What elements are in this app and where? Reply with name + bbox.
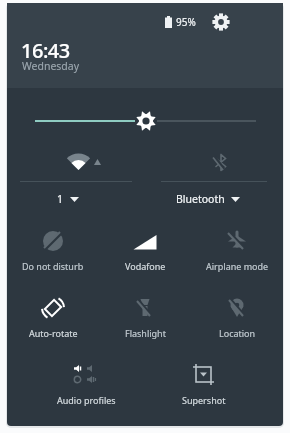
- staticText: Location: [219, 327, 256, 339]
- staticText: Airplane mode: [206, 260, 269, 272]
- button[interactable]: Flashlight: [99, 282, 191, 349]
- button[interactable]: Audio profiles: [27, 349, 145, 416]
- staticText: Bluetooth: [176, 192, 225, 206]
- button[interactable]: Airplane mode: [191, 215, 283, 282]
- button[interactable]: Bluetooth: [145, 143, 283, 215]
- staticText: Supershot: [182, 394, 226, 406]
- staticText: Audio profiles: [57, 394, 116, 406]
- button[interactable]: Location: [191, 282, 283, 349]
- staticText: 16:43: [21, 37, 70, 64]
- staticText: 95%: [176, 15, 196, 29]
- button[interactable]: 1: [7, 143, 145, 215]
- staticText: Do not disturb: [22, 260, 84, 272]
- staticText: Auto-rotate: [29, 327, 78, 339]
- staticText: 1: [57, 192, 64, 206]
- staticText: Wednesday: [22, 59, 80, 73]
- button[interactable]: Auto-rotate: [7, 282, 99, 349]
- button[interactable]: Vodafone: [99, 215, 191, 282]
- staticText: Flashlight: [125, 327, 166, 339]
- button[interactable]: [212, 13, 230, 31]
- button[interactable]: Do not disturb: [7, 215, 99, 282]
- staticText: Vodafone: [125, 260, 166, 272]
- button[interactable]: Supershot: [145, 349, 263, 416]
